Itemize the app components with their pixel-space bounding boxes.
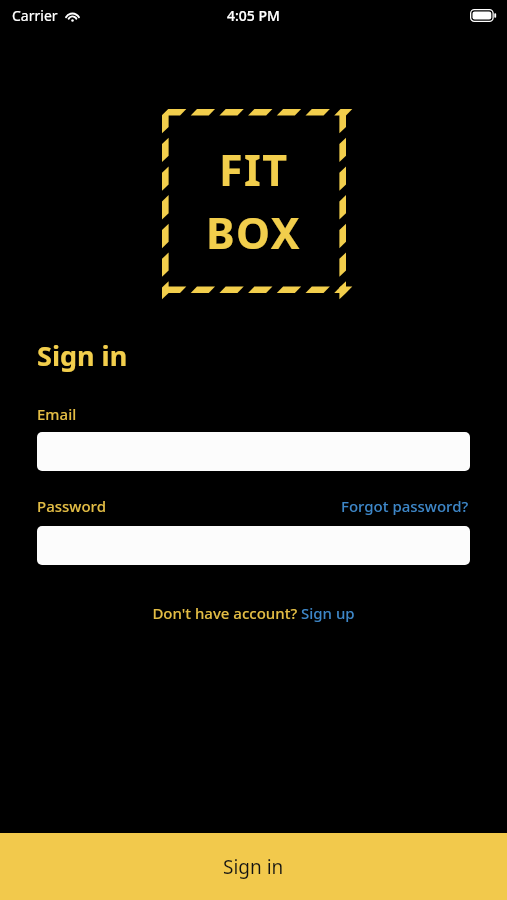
staticText: Forgot password? <box>341 496 469 516</box>
staticText: Sign in <box>223 854 284 880</box>
button[interactable]: Don't have account? Sign up <box>150 601 357 625</box>
button[interactable]: Sign in <box>0 833 507 900</box>
staticText: Don't have account? Sign up <box>152 603 355 623</box>
staticText: BOX <box>206 203 302 262</box>
button[interactable] <box>37 432 470 471</box>
button[interactable]: Forgot password? <box>340 494 470 518</box>
staticText: Email <box>37 404 77 424</box>
staticText: Carrier <box>12 6 58 25</box>
staticText: FIT <box>219 140 289 199</box>
staticText: Sign in <box>37 337 128 374</box>
button[interactable] <box>37 526 470 565</box>
staticText: 4:05 PM <box>227 6 280 25</box>
staticText: Password <box>37 496 106 516</box>
